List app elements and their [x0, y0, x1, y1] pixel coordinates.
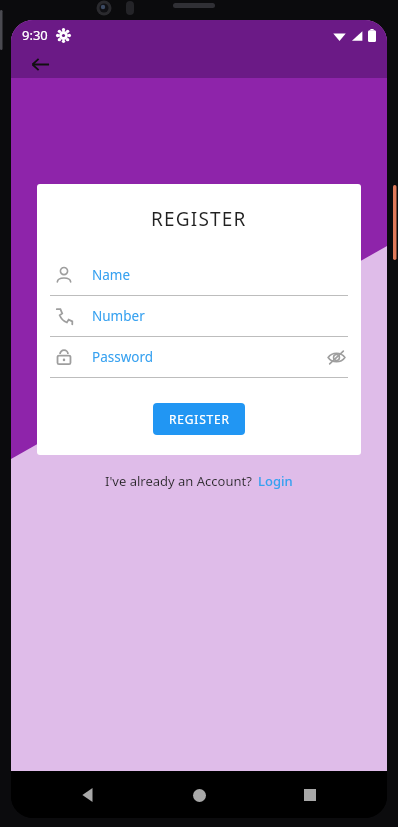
button[interactable]: Recent apps: [293, 778, 327, 812]
staticText: REGISTER: [151, 206, 247, 232]
staticText: REGISTER: [169, 411, 230, 427]
staticText: Password: [92, 348, 154, 366]
staticText: 9:30: [22, 26, 48, 44]
button[interactable]: Login: [258, 472, 293, 490]
button[interactable]: REGISTER: [153, 403, 245, 435]
button[interactable]: Toggle password visibility: [324, 345, 348, 369]
button[interactable]: Password: [50, 337, 348, 378]
button[interactable]: Number: [50, 296, 348, 337]
staticText: Number: [92, 307, 145, 325]
button[interactable]: Name: [50, 255, 348, 296]
staticText: Login: [258, 472, 293, 490]
button[interactable]: Home: [182, 778, 216, 812]
button[interactable]: Back: [27, 51, 53, 77]
button[interactable]: Back: [71, 778, 105, 812]
staticText: I've already an Account?: [105, 472, 252, 490]
staticText: Name: [92, 266, 131, 284]
